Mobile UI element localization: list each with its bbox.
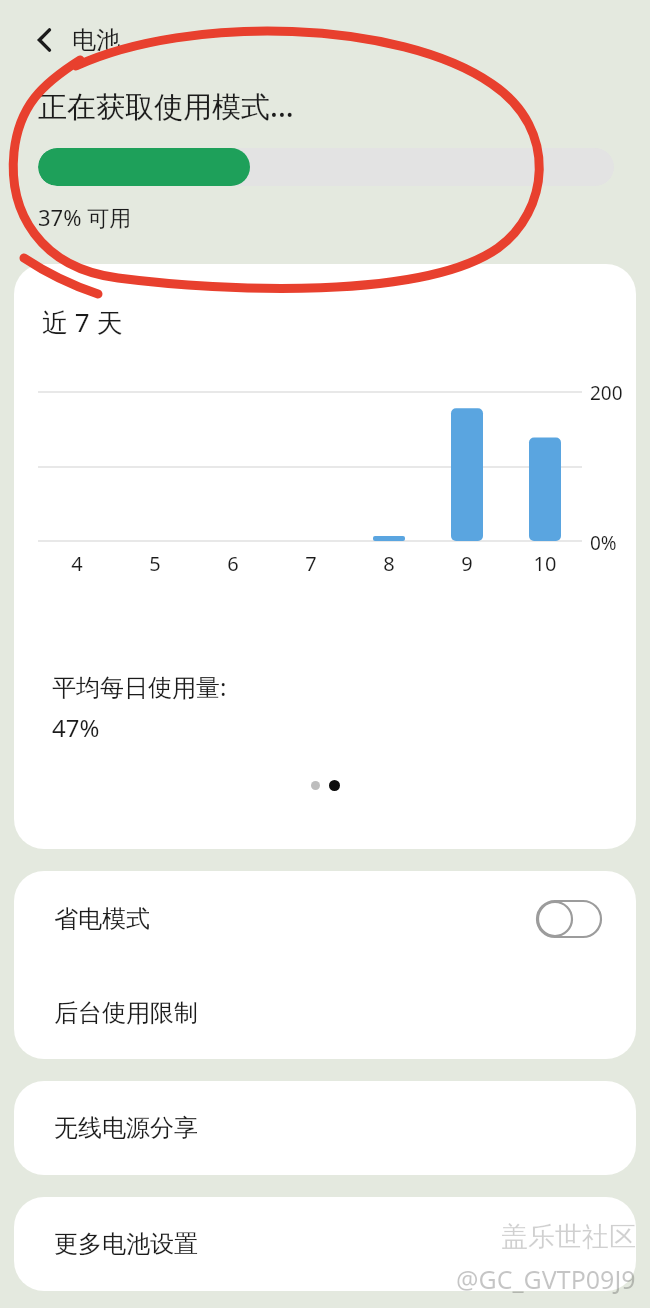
- staticText: 8: [374, 550, 404, 577]
- staticText: 无线电源分享: [54, 1113, 198, 1143]
- staticText: 7: [296, 550, 326, 577]
- button[interactable]: 省电模式: [14, 871, 636, 967]
- staticText: 37% 可用: [38, 202, 132, 232]
- staticText: 后台使用限制: [54, 998, 198, 1028]
- staticText: 200: [590, 380, 623, 406]
- staticText: 省电模式: [54, 904, 150, 934]
- staticText: @GC_GVTP09J9: [456, 1262, 636, 1296]
- staticText: 0%: [590, 530, 617, 556]
- button[interactable]: 后台使用限制: [14, 967, 636, 1059]
- staticText: 正在获取使用模式...: [38, 86, 294, 126]
- button[interactable]: 无线电源分享: [14, 1081, 636, 1175]
- button[interactable]: Page 1: [311, 781, 320, 790]
- staticText: 47%: [52, 711, 100, 744]
- button[interactable]: Back: [24, 19, 66, 61]
- staticText: 电池: [72, 25, 120, 55]
- button[interactable]: 更多电池设置: [14, 1197, 636, 1291]
- staticText: 近 7 天: [42, 304, 123, 340]
- button[interactable]: Page 2: [329, 780, 340, 791]
- staticText: 5: [140, 550, 170, 577]
- staticText: 更多电池设置: [54, 1229, 198, 1259]
- staticText: 4: [62, 550, 92, 577]
- button[interactable]: Power saving toggle: [536, 900, 602, 938]
- staticText: 平均每日使用量:: [52, 670, 227, 703]
- button[interactable]: 近 7 天: [14, 264, 636, 849]
- staticText: 10: [530, 550, 560, 577]
- staticText: 6: [218, 550, 248, 577]
- staticText: 9: [452, 550, 482, 577]
- staticText: 盖乐世社区: [501, 1220, 636, 1254]
